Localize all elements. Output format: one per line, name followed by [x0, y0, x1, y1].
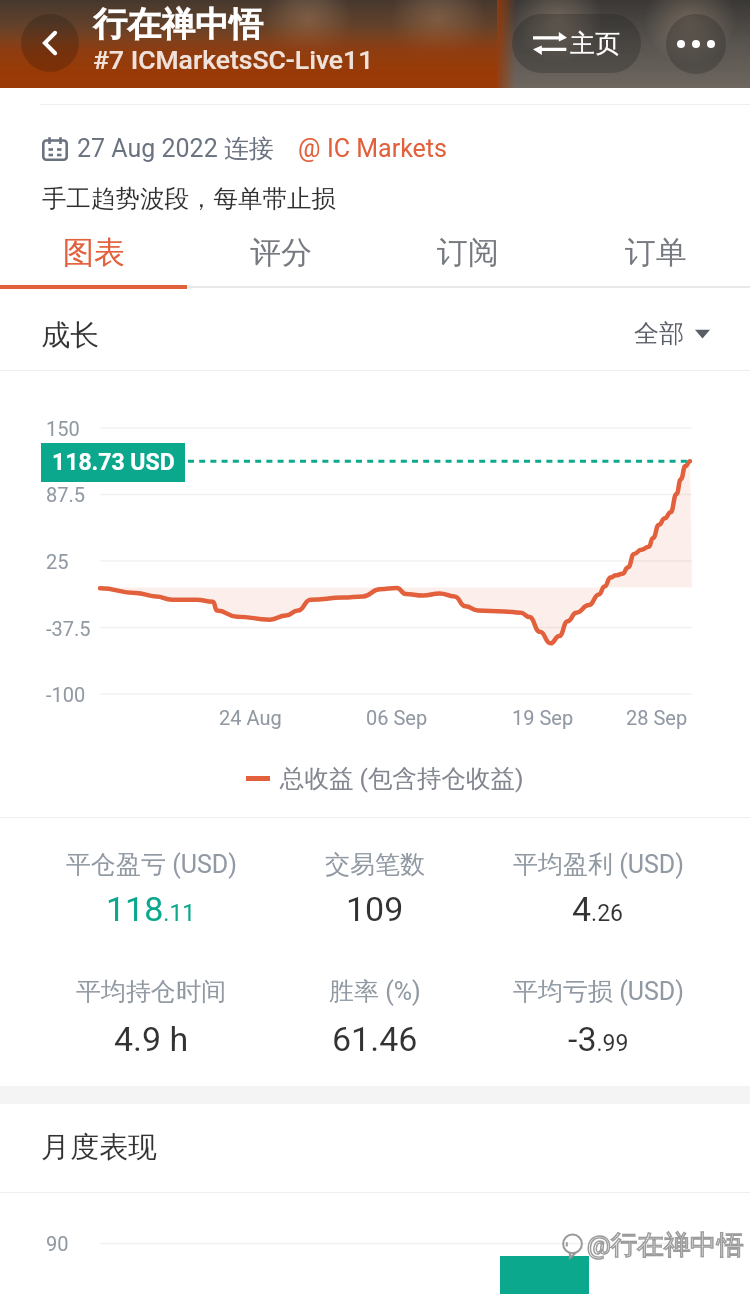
staticText: 19 Sep — [512, 706, 574, 729]
button[interactable]: 图表 — [0, 218, 187, 286]
button[interactable]: @ — [298, 134, 447, 163]
button[interactable]: 订阅 — [374, 218, 562, 286]
button[interactable]: More options — [666, 14, 726, 74]
staticText: 28 Sep — [626, 706, 688, 729]
button[interactable]: Back — [21, 14, 79, 72]
staticText: 手工趋势波段，每单带止损 — [42, 183, 336, 214]
staticText: 总收益 (包含持仓收益) — [280, 763, 524, 794]
staticText: 27 Aug 2022 连接 — [77, 133, 274, 164]
staticText: 全部 — [634, 318, 684, 349]
staticText: 109 — [346, 889, 404, 929]
staticText: 成长 — [41, 317, 99, 354]
staticText: 平均盈利 (USD) — [513, 849, 684, 880]
staticText: 4.26 — [572, 889, 624, 929]
staticText: 118.73 USD — [52, 449, 175, 476]
staticText: 61.46 — [332, 1019, 418, 1059]
staticText: 订单 — [625, 233, 687, 272]
staticText: 主页 — [570, 28, 620, 59]
button[interactable]: 评分 — [187, 218, 374, 286]
staticText: IC Markets — [327, 134, 447, 163]
button[interactable]: 订单 — [562, 218, 750, 286]
staticText: -37.5 — [46, 617, 91, 640]
staticText: 4.9 h — [114, 1019, 189, 1059]
staticText: 150 — [46, 417, 80, 440]
button[interactable]: 全部 — [634, 318, 710, 349]
staticText: @ — [298, 134, 321, 163]
staticText: 评分 — [250, 233, 312, 272]
staticText: 24 Aug — [219, 706, 282, 729]
staticText: @行在禅中悟 — [587, 1228, 744, 1261]
staticText: 胜率 (%) — [329, 976, 421, 1007]
staticText: #7 ICMarketsSC-Live11 — [93, 44, 374, 75]
staticText: 90 — [46, 1232, 69, 1255]
staticText: 118.11 — [106, 889, 196, 929]
staticText: 06 Sep — [366, 706, 428, 729]
staticText: -3.99 — [568, 1019, 629, 1059]
button[interactable]: 主页 — [512, 14, 641, 73]
staticText: 25 — [46, 550, 69, 573]
staticText: 订阅 — [437, 233, 499, 272]
staticText: 图表 — [63, 233, 125, 272]
staticText: 平仓盈亏 (USD) — [66, 849, 237, 880]
staticText: -100 — [46, 683, 86, 706]
staticText: 行在禅中悟 — [93, 3, 263, 46]
staticText: 平均持仓时间 — [76, 976, 226, 1007]
staticText: 平均亏损 (USD) — [513, 976, 684, 1007]
staticText: 月度表现 — [41, 1129, 157, 1166]
staticText: 交易笔数 — [325, 849, 425, 880]
staticText: 87.5 — [46, 483, 85, 506]
